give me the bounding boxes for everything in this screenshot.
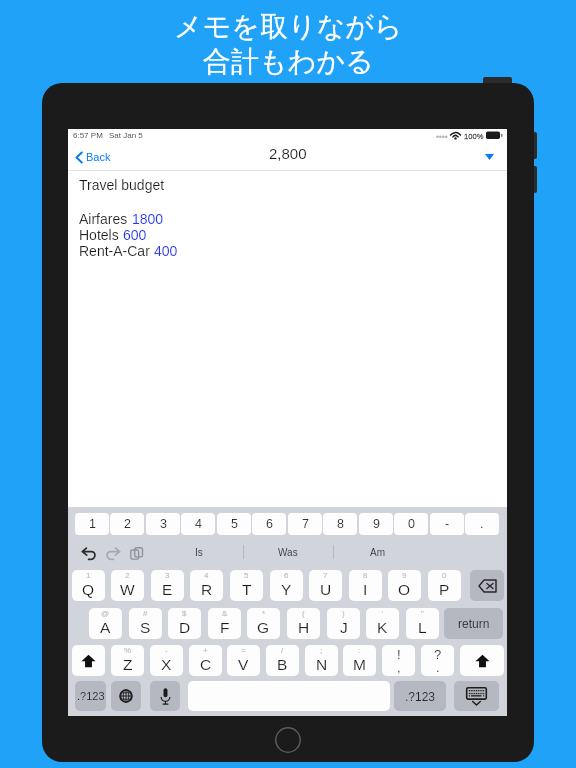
button[interactable]: More options <box>475 142 507 172</box>
staticText: Airfares <box>79 211 132 227</box>
button[interactable]: 3 <box>146 513 180 535</box>
staticText: P <box>439 581 450 598</box>
button[interactable]: 0 <box>394 513 428 535</box>
button[interactable]: Back <box>68 142 119 172</box>
button[interactable]: 8 <box>349 570 382 601</box>
button[interactable]: Was <box>243 540 333 564</box>
button[interactable]: .?123 <box>394 681 446 711</box>
staticText: C <box>200 656 212 673</box>
button[interactable]: 5 <box>230 570 263 601</box>
staticText: - <box>165 646 168 655</box>
button[interactable]: 3 <box>151 570 184 601</box>
button[interactable]: Change keyboard <box>111 681 141 711</box>
button[interactable]: : <box>343 645 376 676</box>
staticText: O <box>398 581 411 598</box>
button[interactable]: - <box>150 645 183 676</box>
button[interactable]: = <box>227 645 260 676</box>
button[interactable]: ) <box>327 608 360 639</box>
staticText: : <box>358 646 361 655</box>
button[interactable]: 4 <box>190 570 223 601</box>
staticText: I <box>363 581 368 598</box>
staticText: . <box>480 517 484 531</box>
staticText: . <box>436 660 440 675</box>
button[interactable]: 8 <box>323 513 357 535</box>
button[interactable]: Undo <box>80 545 98 561</box>
staticText: 9 <box>373 517 380 531</box>
staticText: Was <box>278 547 298 558</box>
staticText: G <box>257 619 270 636</box>
button[interactable]: Shift <box>460 645 504 676</box>
staticText: .?123 <box>405 690 436 703</box>
button[interactable]: 2 <box>110 513 144 535</box>
staticText: Back <box>86 151 111 163</box>
button[interactable]: 9 <box>388 570 421 601</box>
staticText: return <box>458 617 490 630</box>
button[interactable]: . <box>465 513 499 535</box>
staticText: 600 <box>123 227 147 243</box>
button[interactable]: ? <box>421 645 454 676</box>
button[interactable]: 5 <box>217 513 251 535</box>
staticText: 7 <box>302 517 309 531</box>
staticText: $ <box>182 609 187 618</box>
button[interactable]: 0 <box>428 570 461 601</box>
staticText: Sat Jan 5 <box>109 131 143 140</box>
button[interactable]: Shift <box>72 645 105 676</box>
button[interactable]: * <box>247 608 280 639</box>
button[interactable]: 1 <box>72 570 105 601</box>
button[interactable]: % <box>111 645 144 676</box>
button[interactable]: ' <box>366 608 399 639</box>
staticText: " <box>421 609 424 618</box>
staticText: Am <box>370 547 385 558</box>
staticText: 1 <box>86 571 91 580</box>
staticText: V <box>238 656 249 673</box>
button[interactable]: return <box>444 608 503 639</box>
staticText: M <box>353 656 366 673</box>
staticText: 1 <box>89 517 96 531</box>
button[interactable]: # <box>129 608 162 639</box>
button[interactable]: Is <box>154 540 243 564</box>
button[interactable]: ; <box>305 645 338 676</box>
staticText: 1800 <box>132 211 164 227</box>
button[interactable]: 7 <box>309 570 342 601</box>
button[interactable]: 9 <box>359 513 393 535</box>
staticText: 6 <box>266 517 273 531</box>
staticText: J <box>340 619 348 636</box>
button[interactable]: / <box>266 645 299 676</box>
button[interactable]: 2 <box>111 570 144 601</box>
staticText: - <box>445 517 450 531</box>
staticText: 0 <box>442 571 447 580</box>
button[interactable]: - <box>430 513 464 535</box>
button[interactable]: Backspace <box>470 570 504 601</box>
button[interactable]: ! <box>382 645 415 676</box>
button[interactable]: & <box>208 608 241 639</box>
staticText: 100% <box>464 132 484 140</box>
button[interactable]: 6 <box>270 570 303 601</box>
button[interactable]: Paste <box>127 545 145 561</box>
staticText: 2 <box>125 571 130 580</box>
button[interactable]: .?123 <box>75 681 106 711</box>
staticText: 6:57 PM <box>73 131 103 140</box>
staticText: # <box>143 609 148 618</box>
staticText: A <box>100 619 111 636</box>
button[interactable]: ( <box>287 608 320 639</box>
button[interactable]: 6 <box>252 513 286 535</box>
staticText: % <box>124 646 132 655</box>
button[interactable]: $ <box>168 608 201 639</box>
button[interactable]: 7 <box>288 513 322 535</box>
button[interactable]: Dictate <box>150 681 180 711</box>
staticText: + <box>203 646 208 655</box>
button[interactable]: " <box>406 608 439 639</box>
staticText: 5 <box>231 517 238 531</box>
button[interactable]: @ <box>89 608 122 639</box>
staticText: 2 <box>124 517 131 531</box>
staticText: 8 <box>337 517 344 531</box>
button[interactable]: 1 <box>75 513 109 535</box>
staticText: ' <box>382 609 384 618</box>
button[interactable]: Redo <box>104 545 122 561</box>
button[interactable]: Hide keyboard <box>454 681 499 711</box>
button[interactable]: Am <box>333 540 421 564</box>
button[interactable]: 4 <box>181 513 215 535</box>
staticText: ! <box>397 647 401 662</box>
button[interactable]: + <box>189 645 222 676</box>
